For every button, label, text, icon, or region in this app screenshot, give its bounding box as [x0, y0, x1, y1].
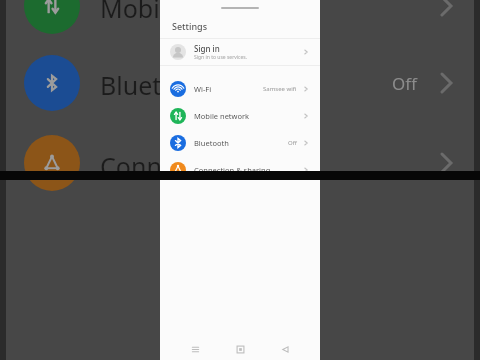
staticText: Off	[288, 139, 297, 147]
staticText: Samsee wifi	[263, 85, 297, 93]
staticText: Sign in to use services.	[194, 54, 247, 61]
button[interactable]: Back	[275, 339, 295, 359]
staticText: Wi-Fi	[194, 84, 263, 94]
staticText: Sign in	[194, 43, 220, 54]
staticText: Connection & sharing	[194, 165, 302, 175]
staticText: Bluetooth	[194, 138, 288, 148]
button[interactable]: Bluetooth	[160, 129, 320, 156]
button[interactable]: Mobile network	[160, 102, 320, 129]
button[interactable]: Sign in	[160, 39, 320, 65]
staticText: Conne	[100, 149, 176, 183]
staticText: Mobile	[100, 0, 181, 25]
staticText: Off	[392, 72, 417, 95]
staticText: Settings	[172, 20, 208, 32]
staticText: Bluetooth	[100, 68, 217, 102]
button[interactable]: Home	[230, 339, 250, 359]
staticText: Mobile network	[194, 111, 302, 121]
button[interactable]: Recents	[185, 339, 205, 359]
button[interactable]: Connection & sharing	[160, 156, 320, 183]
button[interactable]: Wi-Fi	[160, 75, 320, 102]
